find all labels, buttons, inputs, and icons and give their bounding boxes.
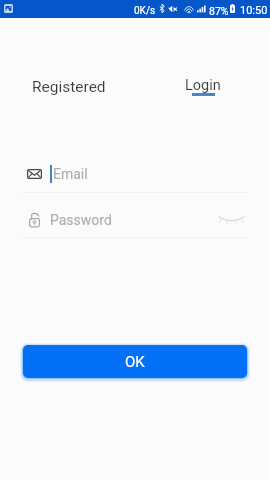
staticText: OK (125, 353, 145, 371)
button[interactable]: Registered (14, 74, 124, 100)
button[interactable]: Login (168, 74, 238, 100)
staticText: Registered (32, 78, 106, 96)
staticText: 87% (209, 5, 229, 17)
button[interactable]: Show password (216, 207, 246, 231)
button[interactable] (22, 162, 248, 193)
staticText: 0K/s (134, 5, 156, 17)
staticText: Email (53, 166, 88, 182)
staticText: Login (185, 77, 221, 94)
button[interactable] (22, 208, 248, 238)
staticText: Password (50, 212, 112, 228)
button[interactable]: OK (23, 345, 247, 378)
staticText: 10:50 (240, 4, 268, 17)
